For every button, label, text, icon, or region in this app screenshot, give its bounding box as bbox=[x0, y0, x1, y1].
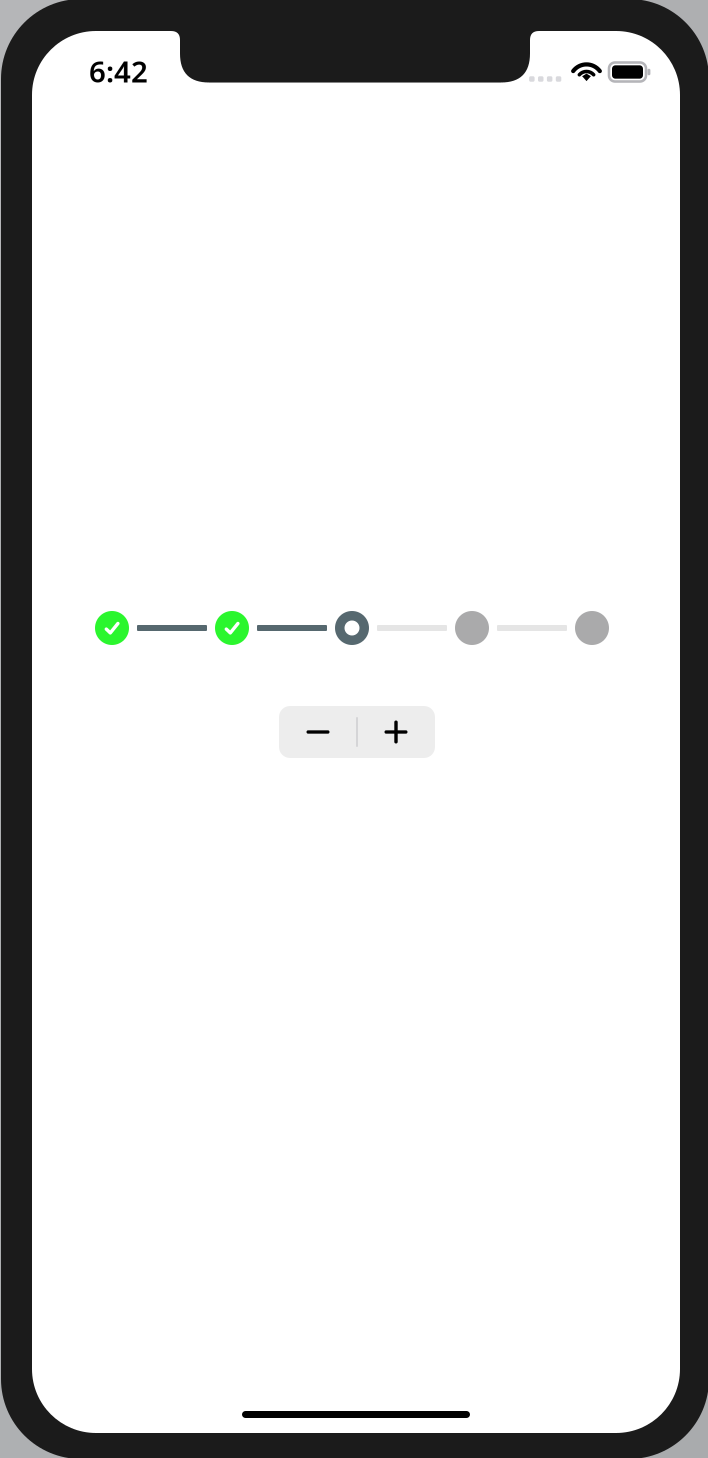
button[interactable]: Decrement bbox=[279, 706, 357, 758]
staticText: 6:42 bbox=[89, 51, 148, 90]
button[interactable]: Increment bbox=[357, 706, 435, 758]
